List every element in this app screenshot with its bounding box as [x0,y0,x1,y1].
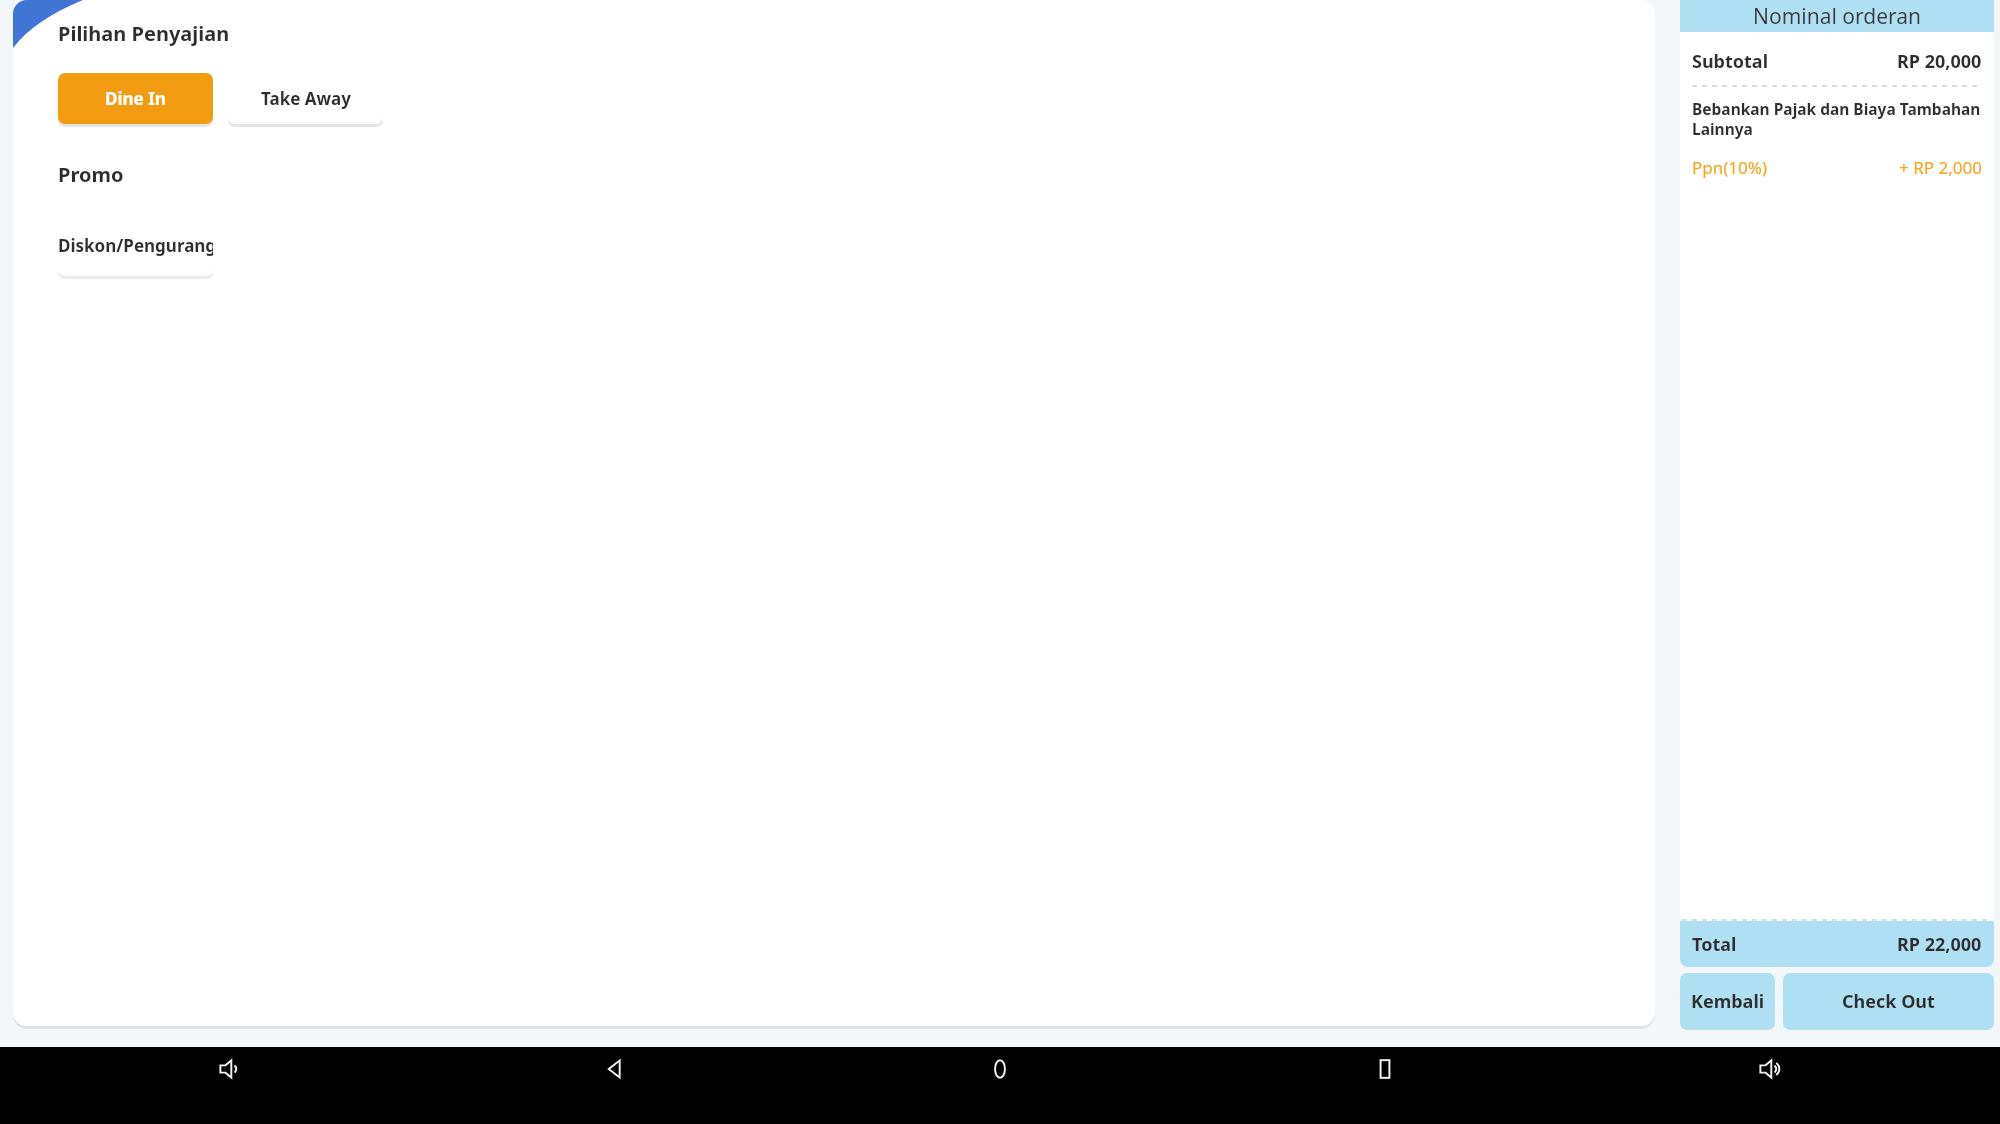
staticText: Bebankan Pajak dan Biaya Tambahan Lainny… [1692,98,1982,139]
staticText: Ppn(10%) [1692,156,1768,179]
button[interactable]: Take Away [228,73,383,124]
button[interactable]: Volume down [38,1047,422,1091]
staticText: Total [1692,932,1737,957]
staticText: Check Out [1842,989,1935,1014]
button[interactable]: Volume up [1577,1047,1962,1091]
staticText: Kembali [1691,989,1765,1014]
staticText: Subtotal [1692,49,1769,74]
button[interactable]: Check Out [1783,973,1994,1030]
button[interactable]: Dine In [58,73,213,124]
staticText: + RP 2,000 [1899,156,1982,179]
staticText: Dine In [105,87,166,110]
button[interactable]: Back [422,1047,807,1091]
staticText: Promo [58,161,124,188]
staticText: Take Away [261,87,351,110]
staticText: Pilihan Penyajian [58,20,230,47]
staticText: RP 22,000 [1897,932,1982,957]
button[interactable]: Kembali [1680,973,1775,1030]
staticText: RP 20,000 [1897,49,1982,74]
staticText: Diskon/Pengurangan [58,234,213,257]
button[interactable]: Home [807,1047,1192,1091]
button[interactable]: Diskon/Pengurangan [58,214,213,276]
staticText: Nominal orderan [1753,2,1922,31]
button[interactable]: Recent apps [1192,1047,1577,1091]
